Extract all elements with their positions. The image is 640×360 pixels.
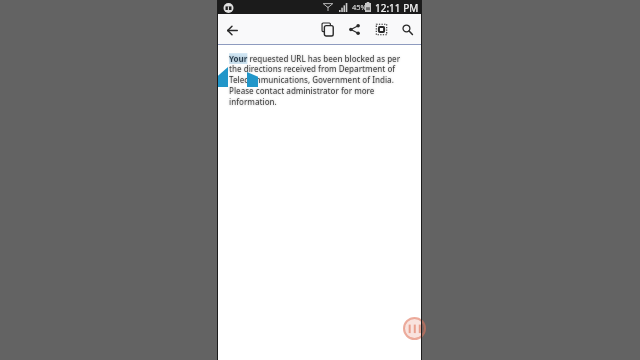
staticText: Your requested URL has been blocked as p… — [229, 53, 403, 108]
button[interactable]: Select all — [370, 18, 392, 40]
button[interactable]: Search — [396, 18, 418, 40]
button[interactable]: Back — [221, 19, 243, 41]
button[interactable]: Share — [343, 18, 365, 40]
staticText: 12:11 PM — [375, 1, 419, 15]
staticText: 45% — [352, 2, 367, 12]
button[interactable]: Copy — [316, 18, 338, 40]
